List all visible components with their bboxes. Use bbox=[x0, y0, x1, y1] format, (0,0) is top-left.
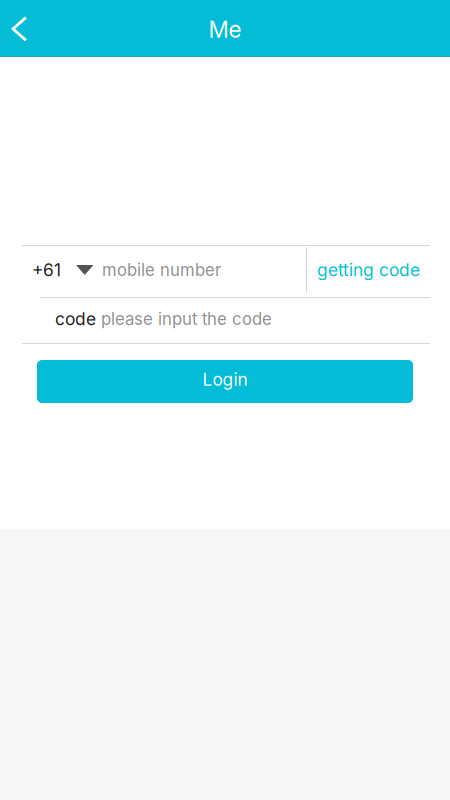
button[interactable]: code bbox=[22, 296, 430, 341]
staticText: Login bbox=[202, 369, 247, 390]
staticText: +61 bbox=[32, 259, 61, 280]
button[interactable]: getting code bbox=[307, 244, 430, 295]
button[interactable]: Login bbox=[37, 360, 413, 403]
staticText: mobile number bbox=[102, 260, 221, 280]
staticText: please input the code bbox=[101, 309, 272, 329]
staticText: getting code bbox=[317, 259, 420, 280]
button[interactable]: Country code +61 bbox=[22, 244, 94, 295]
button[interactable]: Back bbox=[0, 0, 39, 57]
button[interactable]: mobile number bbox=[94, 244, 306, 295]
staticText: code bbox=[55, 308, 96, 329]
staticText: Me bbox=[208, 16, 241, 43]
